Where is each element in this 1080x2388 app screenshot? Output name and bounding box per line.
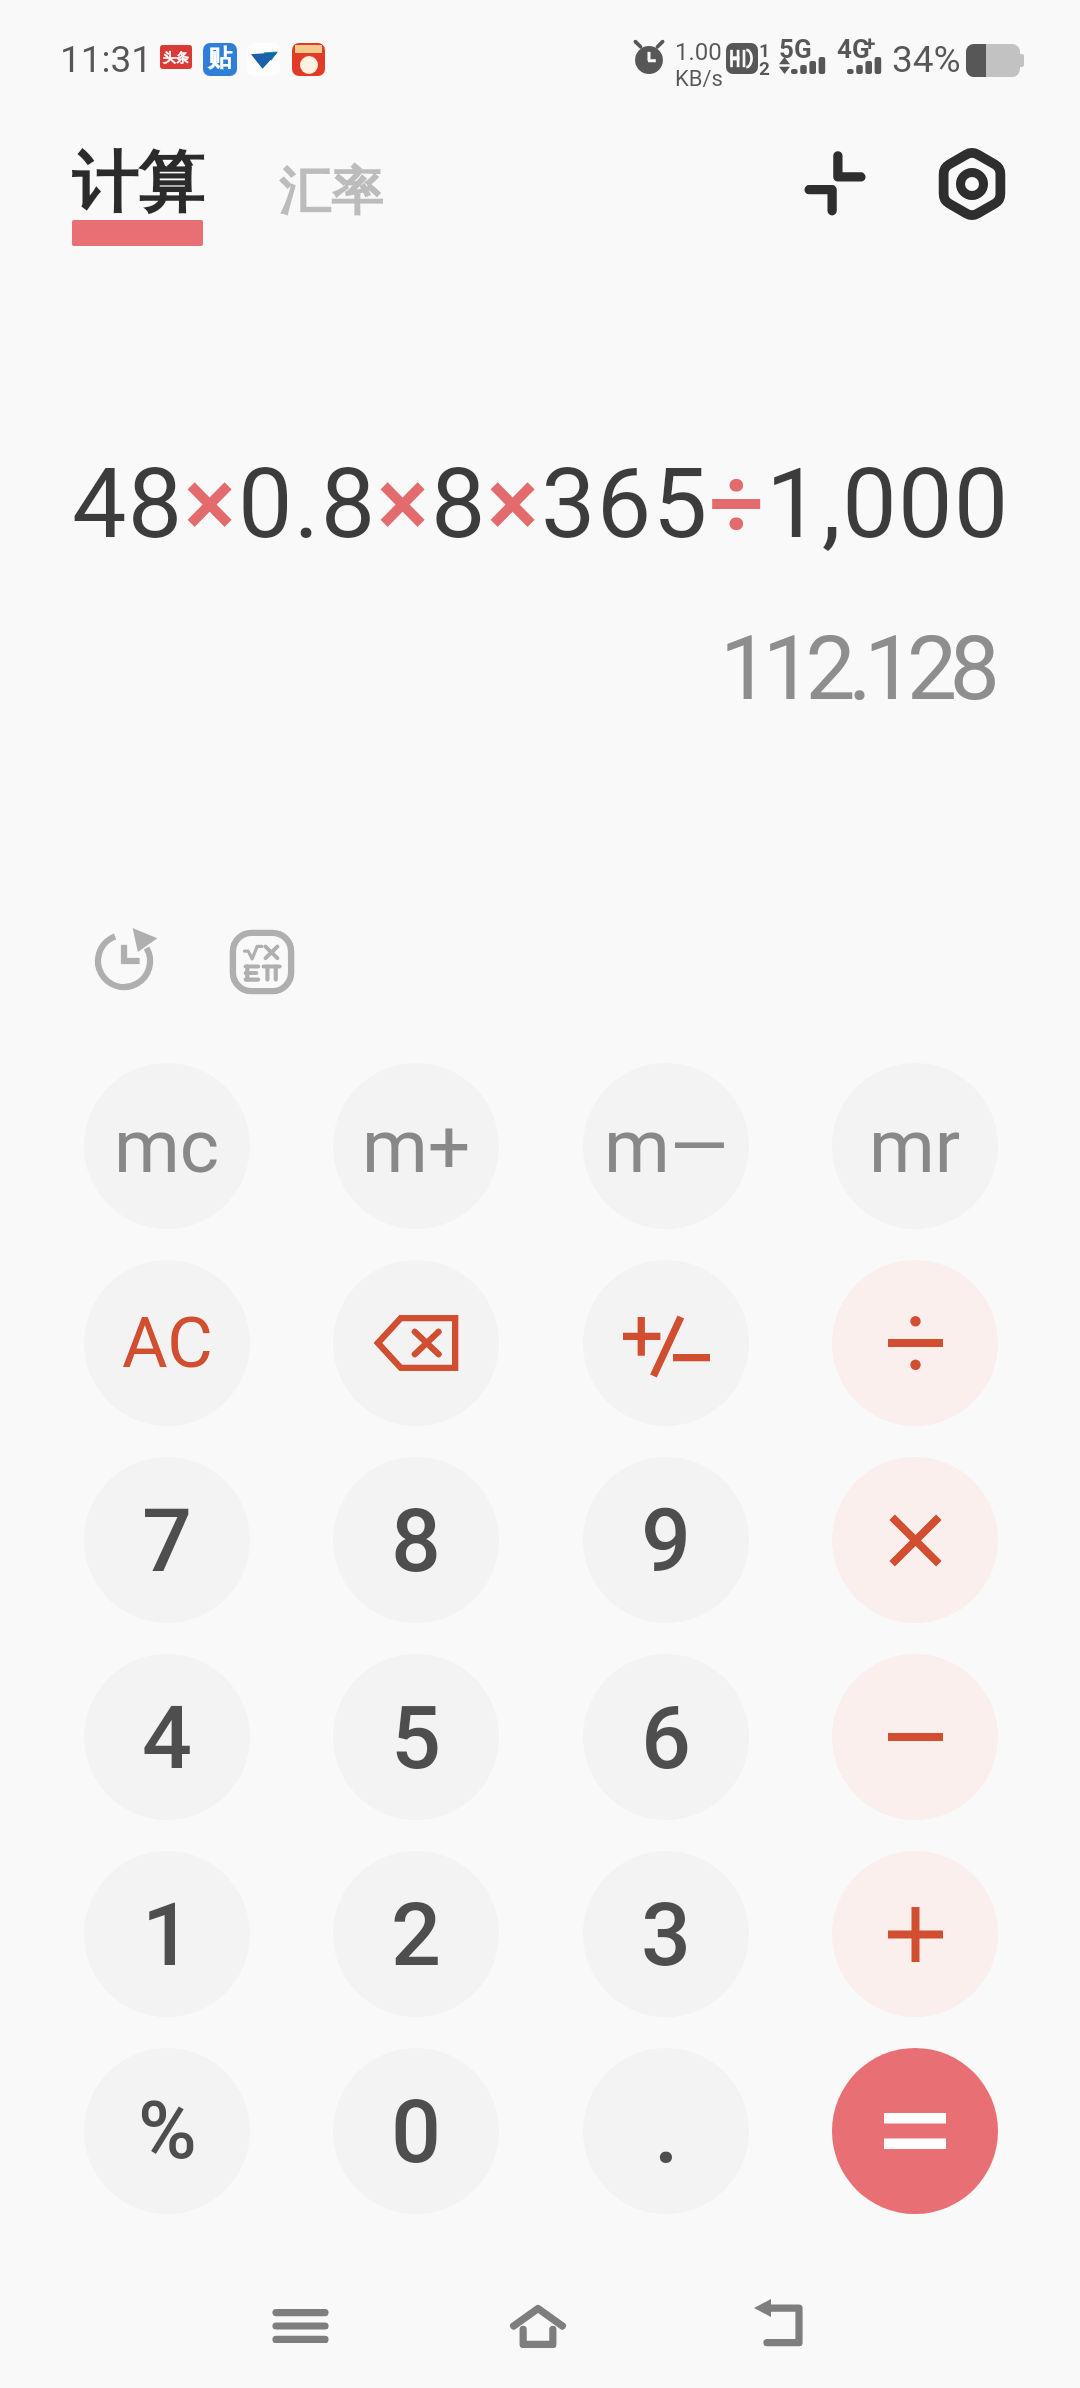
- staticText: 0: [391, 2080, 442, 2183]
- button[interactable]: Plus minus: [583, 1260, 749, 1426]
- staticText: 计算: [72, 141, 204, 224]
- staticText: 汇率: [279, 159, 383, 225]
- staticText: mc: [114, 1102, 220, 1190]
- staticText: 1,000: [766, 447, 1010, 561]
- button[interactable]: 0: [333, 2048, 499, 2214]
- button[interactable]: 3: [583, 1851, 749, 2017]
- staticText: ×: [184, 447, 238, 561]
- staticText: m+: [362, 1102, 471, 1190]
- button[interactable]: Settings: [924, 136, 1020, 232]
- button[interactable]: .: [583, 2048, 749, 2214]
- button[interactable]: m—: [583, 1063, 749, 1229]
- staticText: m—: [604, 1102, 729, 1190]
- staticText: 头条: [163, 49, 189, 65]
- staticText: 2: [759, 57, 770, 79]
- button[interactable]: Backspace: [333, 1260, 499, 1426]
- staticText: 365: [541, 447, 709, 561]
- staticText: 0.8: [238, 447, 377, 561]
- staticText: KB/s: [675, 66, 723, 92]
- button[interactable]: Plus: [832, 1851, 998, 2017]
- staticText: 112.128: [720, 616, 993, 720]
- staticText: 2: [391, 1883, 442, 1986]
- button[interactable]: History: [81, 914, 171, 1004]
- staticText: 7: [142, 1489, 193, 1592]
- staticText: 4G: [837, 34, 870, 64]
- staticText: 34%: [892, 38, 961, 81]
- staticText: 48: [72, 447, 184, 561]
- staticText: 3: [641, 1883, 692, 1986]
- button[interactable]: 2: [333, 1851, 499, 2017]
- button[interactable]: mc: [84, 1063, 250, 1229]
- staticText: 11:31: [60, 38, 153, 81]
- button[interactable]: Equals: [832, 2048, 998, 2214]
- staticText: 8: [431, 447, 487, 561]
- staticText: 8: [391, 1489, 442, 1592]
- staticText: 贴: [208, 43, 232, 73]
- staticText: 1: [142, 1883, 193, 1986]
- button[interactable]: mr: [832, 1063, 998, 1229]
- staticText: .: [654, 2080, 679, 2183]
- staticText: 9: [641, 1489, 692, 1592]
- staticText: ÷: [709, 447, 766, 561]
- button[interactable]: AC: [84, 1260, 250, 1426]
- button[interactable]: 1: [84, 1851, 250, 2017]
- button[interactable]: Minus: [832, 1654, 998, 1820]
- button[interactable]: Back: [724, 2270, 834, 2380]
- button[interactable]: 7: [84, 1457, 250, 1623]
- button[interactable]: 汇率: [279, 150, 389, 222]
- staticText: 6: [641, 1686, 692, 1789]
- button[interactable]: 5: [333, 1654, 499, 1820]
- staticText: 1: [759, 39, 770, 61]
- button[interactable]: %: [84, 2048, 250, 2214]
- button[interactable]: 6: [583, 1654, 749, 1820]
- button[interactable]: Home: [483, 2271, 593, 2381]
- staticText: +: [864, 31, 876, 56]
- button[interactable]: 8: [333, 1457, 499, 1623]
- button[interactable]: Recents: [245, 2271, 355, 2381]
- button[interactable]: 9: [583, 1457, 749, 1623]
- button[interactable]: 4: [84, 1654, 250, 1820]
- staticText: 1.00: [675, 38, 722, 66]
- button[interactable]: m+: [333, 1063, 499, 1229]
- staticText: ×: [487, 447, 541, 561]
- button[interactable]: Divide: [832, 1260, 998, 1426]
- button[interactable]: Scientific mode: [217, 917, 307, 1007]
- staticText: mr: [869, 1102, 961, 1190]
- staticText: AC: [122, 1302, 213, 1384]
- staticText: ×: [377, 447, 431, 561]
- button[interactable]: Multiply: [832, 1457, 998, 1623]
- button[interactable]: 计算: [72, 143, 204, 253]
- staticText: 4: [142, 1686, 193, 1789]
- button[interactable]: Collapse: [790, 138, 880, 228]
- staticText: 5G: [779, 34, 812, 64]
- staticText: 5: [391, 1686, 442, 1789]
- staticText: %: [138, 2084, 197, 2178]
